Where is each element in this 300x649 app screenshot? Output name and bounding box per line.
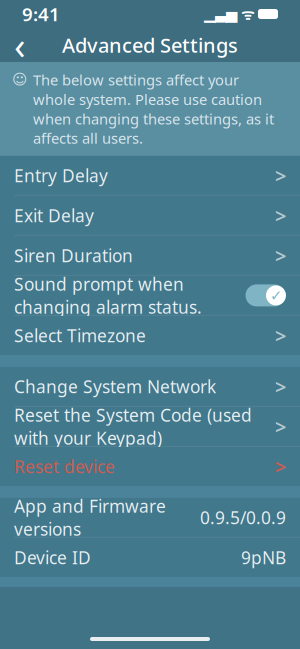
button[interactable]: Change System Network [0, 367, 300, 406]
staticText: > [275, 413, 286, 440]
staticText: The below settings affect your whole sys… [33, 70, 274, 148]
staticText: Advanced Settings [62, 32, 238, 58]
staticText: > [275, 242, 286, 269]
button[interactable]: Reset device [0, 447, 300, 486]
staticText: > [275, 202, 286, 229]
staticText: 9pNB [241, 546, 286, 569]
button[interactable]: Siren Duration [0, 236, 300, 275]
button[interactable]: Device ID [0, 538, 300, 577]
staticText: ᯤ [237, 4, 258, 24]
button[interactable]: Exit Delay [0, 196, 300, 235]
button[interactable]: Sound prompt when changing alarm status. [0, 276, 300, 315]
staticText: ‹ [14, 20, 26, 70]
staticText: > [275, 322, 286, 349]
staticText: ✓ [270, 287, 282, 304]
button[interactable]: Reset the System Code (used with your Ke… [0, 407, 300, 446]
button[interactable]: Back [0, 28, 40, 62]
staticText: Reset device [14, 455, 115, 478]
staticText: Exit Delay [14, 204, 94, 227]
staticText: 9:41 [22, 2, 60, 26]
staticText: Device ID [14, 546, 91, 569]
staticText: ▁▃▅ [204, 6, 237, 22]
staticText: Sound prompt when changing alarm status. [14, 272, 202, 318]
staticText: App and Firmware versions [14, 494, 166, 540]
staticText: ☺ [12, 71, 27, 88]
staticText: Select Timezone [14, 324, 146, 347]
staticText: Entry Delay [14, 164, 108, 187]
staticText: Siren Duration [14, 244, 133, 267]
staticText: 0.9.5/0.0.9 [200, 506, 286, 529]
staticText: Reset the System Code (used with your Ke… [14, 403, 252, 449]
staticText: > [275, 162, 286, 189]
button[interactable]: Entry Delay [0, 156, 300, 195]
button[interactable]: Select Timezone [0, 316, 300, 355]
staticText: > [275, 373, 286, 400]
button[interactable]: App and Firmware versions [0, 498, 300, 537]
staticText: > [275, 453, 286, 480]
staticText: Change System Network [14, 375, 216, 398]
